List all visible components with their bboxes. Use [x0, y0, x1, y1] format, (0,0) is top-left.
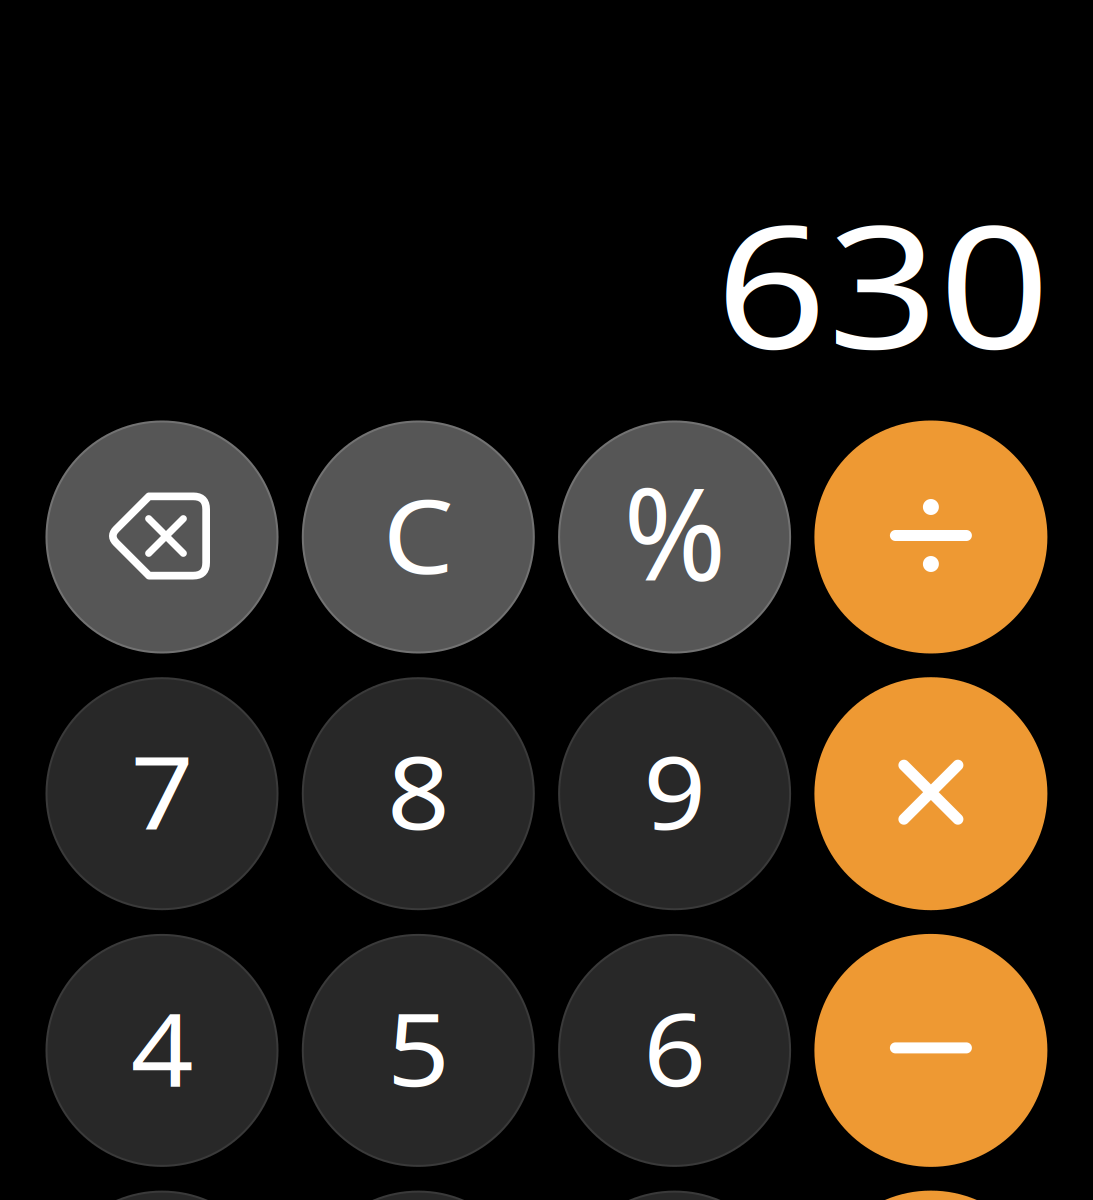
- button[interactable]: 6: [558, 934, 791, 1167]
- button[interactable]: C: [302, 420, 535, 653]
- staticText: 8: [390, 724, 447, 857]
- button[interactable]: 5: [302, 934, 535, 1167]
- staticText: 5: [390, 981, 447, 1114]
- button[interactable]: Multiply: [814, 677, 1047, 910]
- staticText: %: [622, 446, 728, 616]
- button[interactable]: 4: [45, 934, 278, 1167]
- button[interactable]: 2: [302, 1191, 535, 1200]
- button[interactable]: 7: [45, 677, 278, 910]
- button[interactable]: Divide: [814, 420, 1047, 653]
- staticText: 4: [133, 981, 190, 1114]
- button[interactable]: 3: [558, 1191, 791, 1200]
- staticText: 630: [736, 169, 1030, 395]
- staticText: 6: [646, 981, 703, 1114]
- staticText: 9: [646, 724, 703, 857]
- staticText: C: [386, 466, 451, 602]
- button[interactable]: Delete: [45, 420, 278, 653]
- button[interactable]: 8: [302, 677, 535, 910]
- button[interactable]: 9: [558, 677, 791, 910]
- button[interactable]: Minus: [814, 934, 1047, 1167]
- button[interactable]: %: [558, 420, 791, 653]
- staticText: 7: [133, 724, 190, 857]
- button[interactable]: Plus: [814, 1191, 1047, 1200]
- button[interactable]: 1: [45, 1191, 278, 1200]
